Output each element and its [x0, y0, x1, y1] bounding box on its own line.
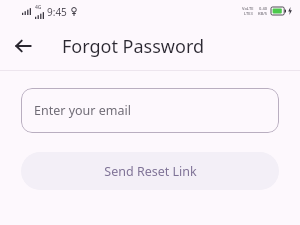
button[interactable]: Back: [10, 33, 36, 59]
staticText: LTE3: [244, 11, 253, 16]
staticText: Send Reset Link: [104, 163, 197, 180]
staticText: 4G: [35, 4, 42, 11]
staticText: VoLTE: [242, 6, 254, 11]
staticText: 0.40: [259, 6, 267, 11]
button[interactable]: Send Reset Link: [21, 152, 279, 190]
staticText: KB/S: [258, 11, 267, 16]
staticText: 9:45: [47, 5, 67, 19]
staticText: Enter your email: [34, 102, 131, 119]
button[interactable]: Enter your email: [21, 88, 279, 133]
staticText: Forgot Password: [62, 34, 205, 59]
